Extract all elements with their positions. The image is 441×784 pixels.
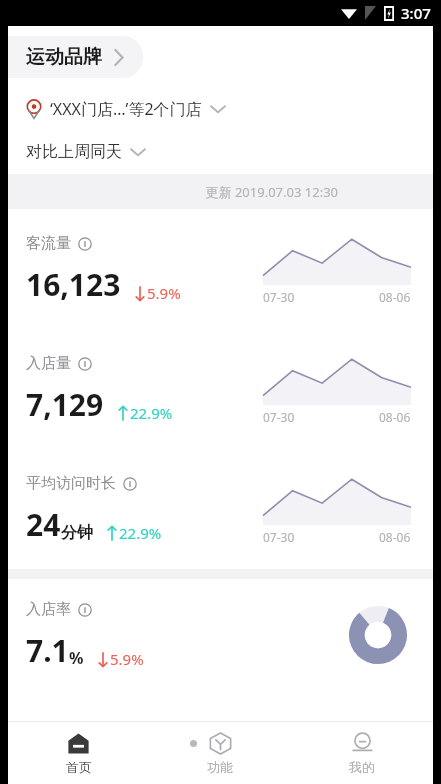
staticText: 运动品牌 bbox=[26, 45, 102, 69]
button[interactable]: 客流量 bbox=[8, 209, 433, 329]
staticText: 对比上周同天 bbox=[26, 142, 122, 162]
button[interactable]: 入店率 bbox=[8, 579, 433, 691]
staticText: 07-30 bbox=[263, 529, 295, 545]
button[interactable]: 功能 bbox=[149, 722, 291, 784]
button[interactable]: 入店量 bbox=[8, 329, 433, 449]
staticText: 5.9% bbox=[147, 283, 181, 303]
staticText: 客流量 bbox=[26, 234, 71, 253]
staticText: 24 bbox=[26, 504, 61, 545]
staticText: 3:07 bbox=[401, 3, 431, 23]
staticText: 7.1 bbox=[26, 630, 69, 671]
button[interactable]: ‘XXX门店…’等2个门店 bbox=[8, 88, 433, 130]
staticText: 首页 bbox=[66, 759, 92, 775]
staticText: 07-30 bbox=[263, 409, 295, 425]
staticText: 功能 bbox=[207, 759, 233, 775]
staticText: 5.9% bbox=[110, 649, 144, 669]
button[interactable]: 平均访问时长 bbox=[8, 449, 433, 569]
staticText: 7,129 bbox=[26, 384, 104, 425]
staticText: ‘XXX门店…’等2个门店 bbox=[50, 98, 202, 120]
staticText: 入店量 bbox=[26, 354, 71, 373]
button[interactable]: 对比上周同天 bbox=[8, 130, 433, 174]
staticText: 07-30 bbox=[263, 289, 295, 305]
button[interactable]: 运动品牌 bbox=[8, 36, 143, 78]
staticText: 更新 2019.07.03 12:30 bbox=[205, 183, 338, 201]
staticText: 分钟 bbox=[61, 523, 93, 543]
staticText: 入店率 bbox=[26, 600, 71, 619]
staticText: 08-06 bbox=[379, 529, 411, 545]
staticText: 22.9% bbox=[130, 403, 173, 423]
button[interactable]: 我的 bbox=[291, 722, 433, 784]
staticText: 我的 bbox=[349, 759, 375, 775]
button[interactable]: 首页 bbox=[8, 722, 149, 784]
staticText: 08-06 bbox=[379, 289, 411, 305]
staticText: % bbox=[69, 647, 84, 669]
staticText: 16,123 bbox=[26, 264, 121, 305]
staticText: 平均访问时长 bbox=[26, 474, 116, 493]
staticText: 22.9% bbox=[119, 523, 162, 543]
staticText: 08-06 bbox=[379, 409, 411, 425]
